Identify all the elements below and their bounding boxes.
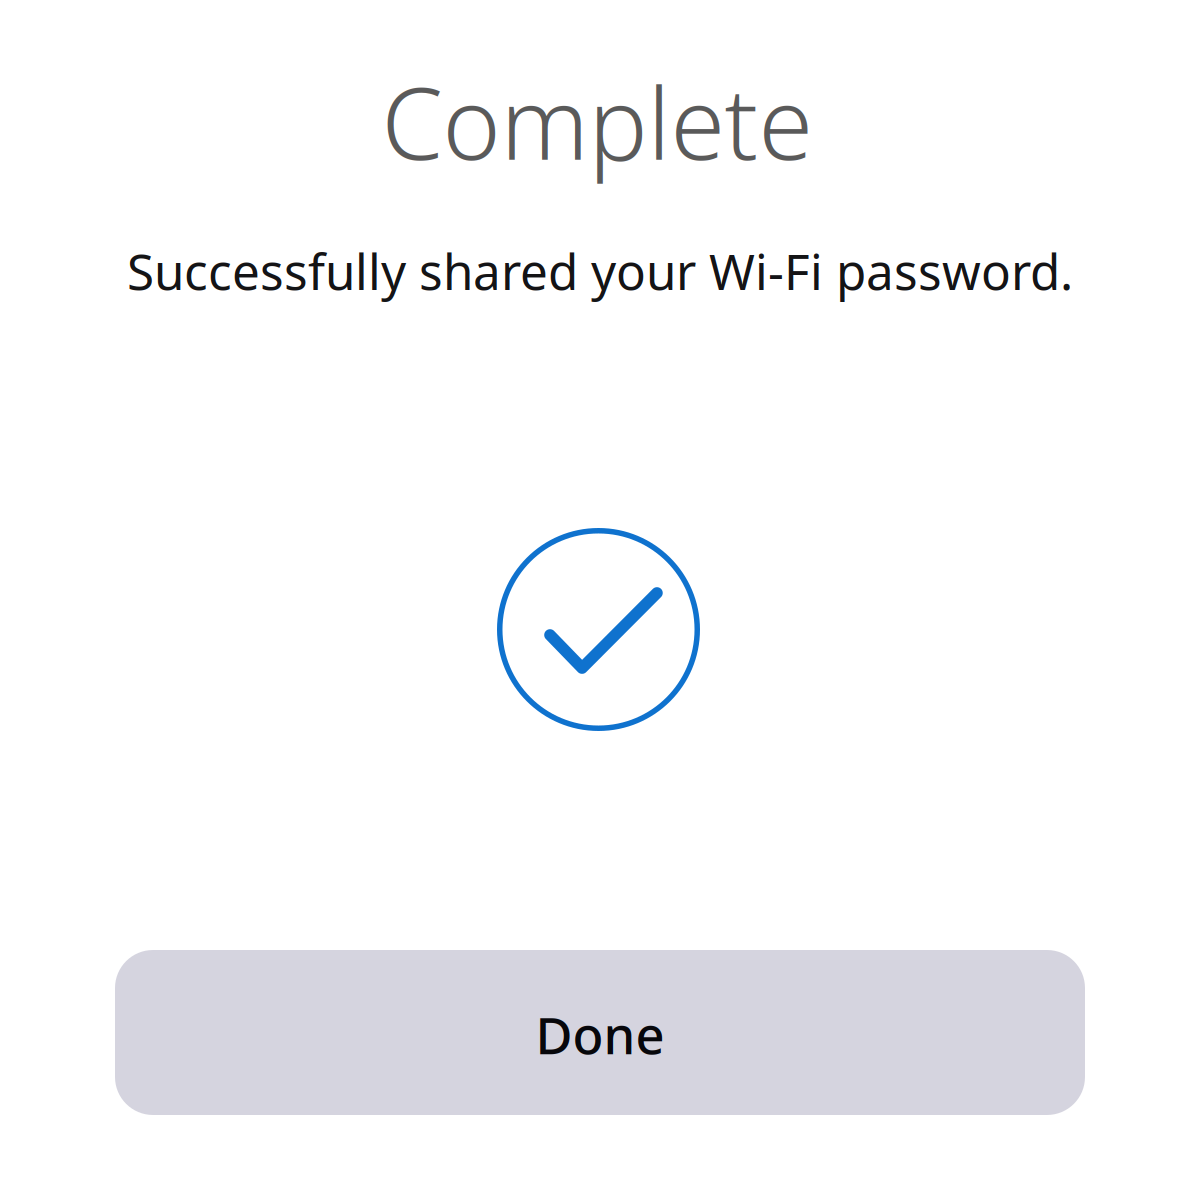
staticText: Successfully shared your Wi-Fi password. (127, 238, 1073, 303)
staticText: Complete (381, 56, 812, 187)
staticText: Done (535, 1001, 664, 1068)
button[interactable]: Done (115, 950, 1085, 1115)
